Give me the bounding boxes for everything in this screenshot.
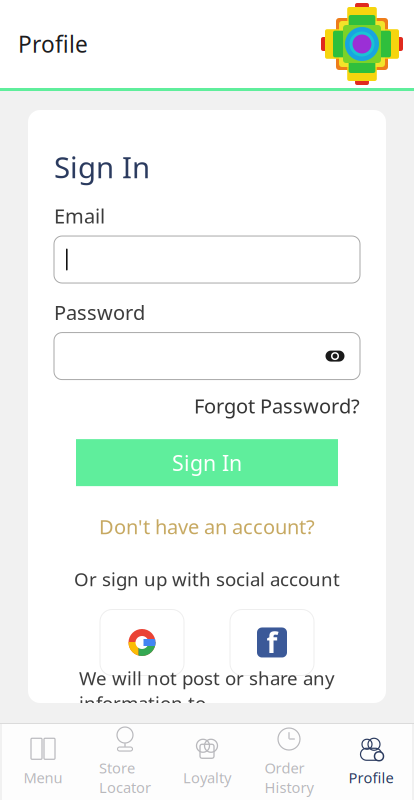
staticText: Profile	[18, 29, 88, 59]
staticText: Password	[54, 299, 145, 326]
staticText: f	[266, 624, 277, 661]
staticText: Store Locator	[99, 758, 151, 797]
staticText: Order History	[264, 758, 313, 797]
button[interactable]: Brand logo	[320, 2, 414, 86]
staticText: We will not post or share any informatio…	[79, 666, 335, 715]
button[interactable]: Order History	[248, 724, 330, 800]
staticText: Or sign up with social account	[74, 567, 340, 591]
button[interactable]: Forgot Password?	[194, 393, 360, 419]
button[interactable]: Store Locator	[84, 724, 166, 800]
staticText: Email	[54, 202, 105, 229]
button[interactable]: Show password	[324, 349, 360, 363]
button[interactable]: Sign up with Google	[100, 609, 184, 675]
button[interactable]: Loyalty	[166, 724, 248, 800]
button[interactable]: Don't have an account?	[54, 513, 360, 540]
staticText: Sign In	[54, 147, 150, 186]
staticText: Forgot Password?	[194, 393, 360, 419]
button[interactable]: Menu	[2, 724, 84, 800]
button[interactable]: Sign up with Facebook	[230, 609, 314, 675]
button[interactable]: Profile	[330, 724, 412, 800]
staticText: Menu	[23, 768, 62, 787]
staticText: Sign In	[172, 448, 242, 477]
button[interactable]: Sign In	[76, 439, 338, 486]
staticText: Don't have an account?	[99, 513, 315, 540]
staticText: Profile	[348, 768, 393, 787]
staticText: Loyalty	[183, 768, 231, 787]
